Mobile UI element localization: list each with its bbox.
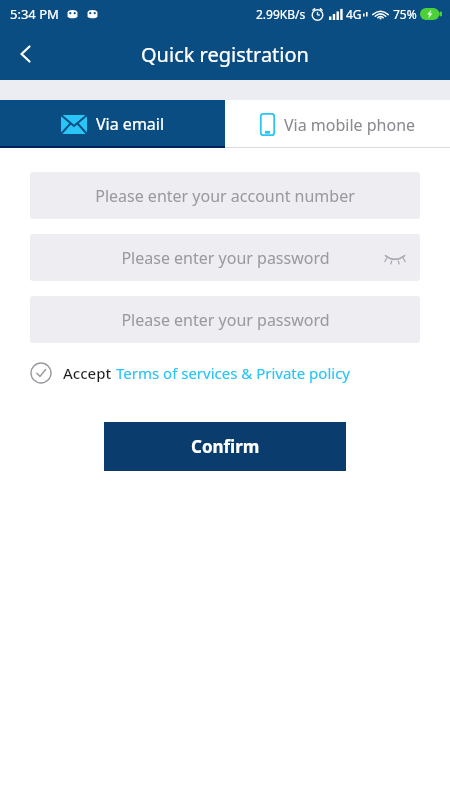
staticText: 2.99KB/s xyxy=(256,6,306,22)
button[interactable]: Please enter your password xyxy=(30,296,420,343)
button[interactable]: Terms of services & Private policy xyxy=(116,363,350,383)
button[interactable]: Confirm xyxy=(104,422,346,471)
staticText: 75% xyxy=(393,6,417,22)
staticText: 4G xyxy=(346,6,362,22)
staticText: Quick registration xyxy=(141,41,309,68)
button[interactable]: Show password xyxy=(382,245,408,271)
staticText: Please enter your account number xyxy=(95,185,355,207)
button[interactable]: Via email xyxy=(0,100,225,148)
staticText: Confirm xyxy=(191,435,260,458)
staticText: 5:34 PM xyxy=(10,5,59,23)
button[interactable]: Please enter your account number xyxy=(30,172,420,219)
staticText: Please enter your password xyxy=(121,247,330,269)
staticText: Please enter your password xyxy=(121,309,330,331)
button[interactable]: Please enter your password xyxy=(30,234,420,281)
button[interactable]: Back xyxy=(0,28,52,80)
button[interactable]: Via mobile phone xyxy=(225,100,450,148)
staticText: Accept xyxy=(63,363,116,383)
staticText: Via mobile phone xyxy=(284,114,416,136)
button[interactable]: Accept xyxy=(30,362,350,384)
staticText: Via email xyxy=(96,113,165,135)
